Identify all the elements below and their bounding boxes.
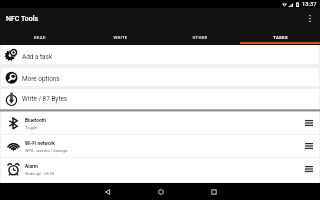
staticText: Write / 87 Bytes [22,95,68,103]
staticText: 13:37 [302,1,317,8]
button[interactable]: Recents [187,183,240,200]
button[interactable]: Wi-Fi network [1,135,319,157]
staticText: Wi-Fi network [25,141,55,147]
button[interactable]: Back [81,183,134,200]
button[interactable]: READ [0,29,80,45]
staticText: Add a task [22,53,53,61]
button[interactable]: Reorder [299,158,319,180]
button[interactable]: Reorder [299,135,319,157]
button[interactable]: Bluetooth [1,112,319,134]
staticText: READ [34,35,46,40]
staticText: Bluetooth [25,118,46,124]
button[interactable]: TASKS [240,29,320,45]
button[interactable]: Reorder [299,112,319,134]
staticText: Alarm [25,164,38,170]
staticText: NFC Tools [6,15,39,23]
button[interactable]: Alarm [1,158,319,180]
staticText: WPA : wakdev / bazinga [25,148,68,153]
button[interactable]: Add a task [1,45,319,64]
button[interactable]: Write / 87 Bytes [1,89,319,109]
button[interactable]: WRITE [80,29,160,45]
staticText: WRITE [113,35,128,40]
button[interactable]: More options [299,8,320,29]
staticText: TASKS [273,35,288,40]
staticText: OTHER [192,35,208,40]
button[interactable]: More options [1,68,319,86]
staticText: Wake up! - 08:30 [25,171,55,176]
button[interactable]: OTHER [160,29,240,45]
staticText: Toggle [25,125,38,130]
staticText: More options [22,75,60,83]
button[interactable]: Home [134,183,187,200]
